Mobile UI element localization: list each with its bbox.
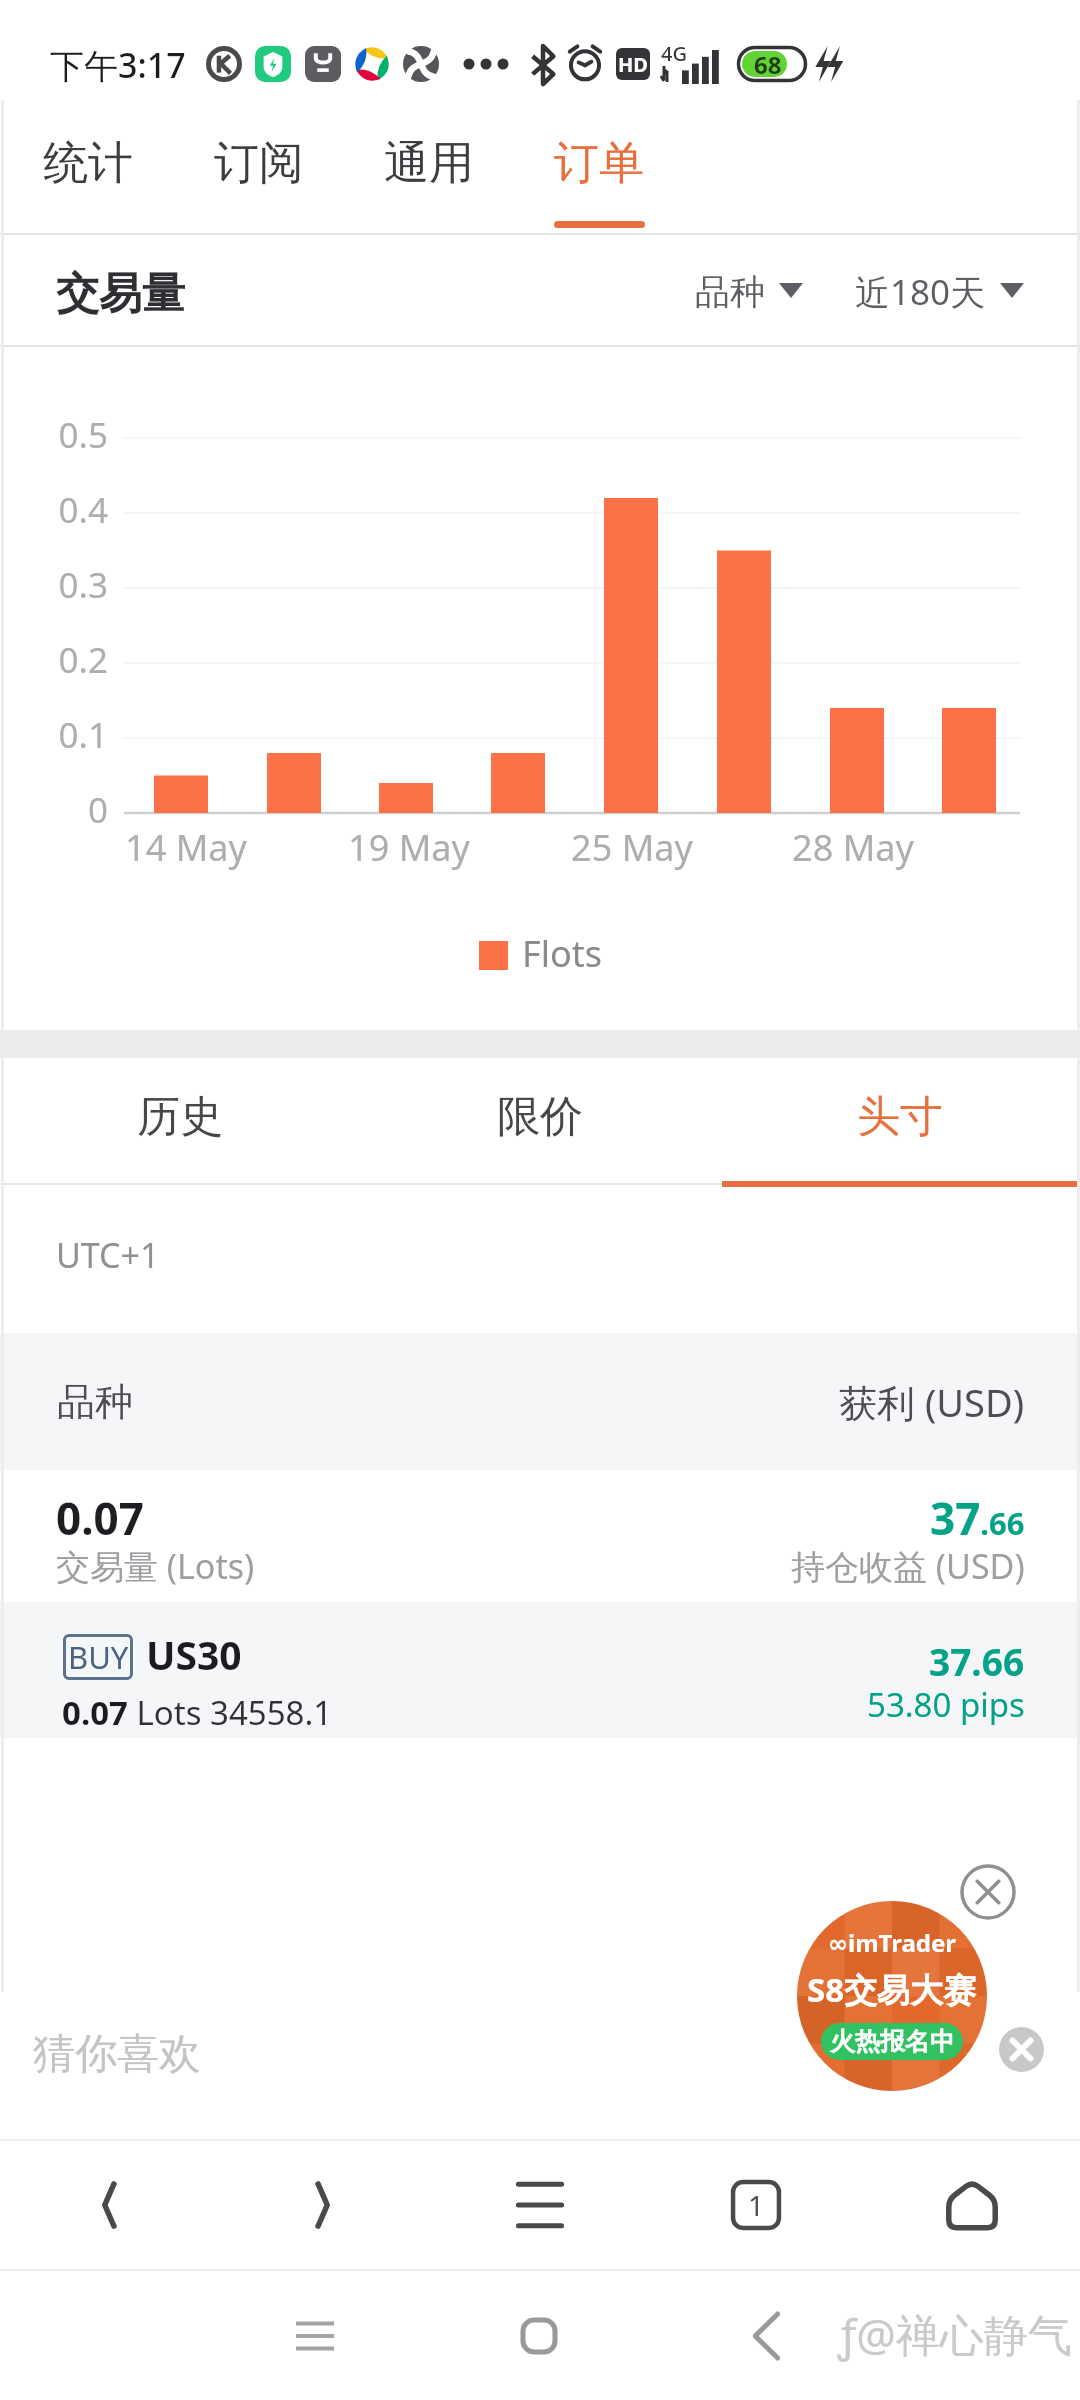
button[interactable]: 订阅 [174, 100, 344, 233]
button[interactable]: Home [494, 2271, 584, 2400]
staticText: ƒ@禅心静气 [838, 2304, 1072, 2364]
button[interactable]: ∞imTrader [797, 1901, 987, 2091]
staticText: 0.3 [6, 561, 108, 609]
staticText: UTC+1 [56, 1232, 160, 1278]
staticText: 53.80 pips [867, 1682, 1025, 1727]
button[interactable]: Tabs [648, 2141, 864, 2269]
staticText: 交易量 [56, 267, 185, 321]
button[interactable]: 统计 [3, 100, 173, 233]
staticText: 订单 [554, 135, 644, 192]
staticText: US30 [146, 1628, 242, 1681]
staticText: 通用 [384, 135, 474, 192]
button[interactable]: 品种 [695, 268, 803, 312]
staticText: 0.5 [6, 411, 108, 459]
staticText: 历史 [137, 1090, 223, 1144]
staticText: 近180天 [855, 268, 986, 316]
staticText: 订阅 [214, 135, 304, 192]
staticText: 28 May [753, 823, 953, 872]
staticText: 0.07 [56, 1488, 144, 1548]
staticText: 持仓收益 (USD) [791, 1543, 1025, 1589]
staticText: 37.66 [930, 1488, 1025, 1548]
staticText: 0.07 Lots 34558.1 [62, 1690, 333, 1735]
button[interactable]: 限价 [360, 1058, 720, 1188]
staticText: 0.4 [6, 486, 108, 534]
staticText: 火热报名中 [830, 2026, 955, 2057]
button[interactable]: Close ad [960, 1864, 1016, 1920]
staticText: 25 May [532, 823, 732, 872]
button[interactable]: Home [864, 2141, 1080, 2269]
button[interactable]: 头寸 [720, 1058, 1080, 1188]
staticText: 头寸 [857, 1090, 943, 1144]
staticText: 68 [754, 48, 782, 81]
button[interactable]: 订单 [514, 100, 684, 233]
staticText: 限价 [497, 1090, 583, 1144]
button[interactable]: Menu [432, 2141, 648, 2269]
staticText: 统计 [43, 135, 133, 192]
button[interactable]: 通用 [344, 100, 514, 233]
staticText: 37.66 [929, 1636, 1025, 1686]
staticText: 品种 [695, 270, 765, 314]
staticText: 4G [661, 40, 687, 67]
button[interactable]: Dismiss [999, 2027, 1044, 2072]
button[interactable]: 历史 [0, 1058, 360, 1188]
staticText: 交易量 (Lots) [56, 1543, 255, 1589]
staticText: 0.1 [6, 711, 108, 759]
staticText: 14 May [86, 823, 286, 872]
button[interactable]: BUY [0, 1602, 1080, 1738]
staticText: 19 May [309, 823, 509, 872]
staticText: 0 [6, 786, 108, 834]
staticText: 下午3:17 [50, 42, 186, 88]
staticText: HD [618, 51, 648, 78]
staticText: Flots [522, 929, 602, 978]
staticText: BUY [68, 1636, 129, 1678]
staticText: 0.2 [6, 636, 108, 684]
button[interactable]: Back [0, 2141, 216, 2269]
staticText: S8交易大赛 [807, 1967, 977, 2012]
button[interactable]: 近180天 [855, 266, 1024, 314]
staticText: 获利 (USD) [839, 1376, 1025, 1428]
button[interactable]: Forward [216, 2141, 432, 2269]
staticText: ∞imTrader [828, 1926, 957, 1959]
button[interactable]: Back [722, 2271, 812, 2400]
button[interactable]: Recents [270, 2271, 360, 2400]
staticText: 品种 [57, 1378, 133, 1426]
staticText: 1 [748, 2186, 765, 2224]
staticText: 猜你喜欢 [33, 2028, 201, 2081]
